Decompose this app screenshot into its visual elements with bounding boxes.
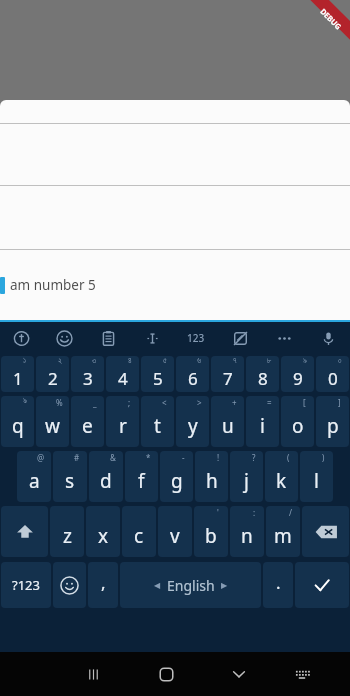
staticText: ঌ <box>23 397 27 405</box>
button[interactable]: + <box>211 396 244 447</box>
button[interactable]: ; <box>106 396 139 447</box>
button[interactable]: Stickers off <box>218 322 262 354</box>
button[interactable]: ৪ <box>106 356 139 392</box>
staticText: - <box>182 452 185 463</box>
staticText: & <box>110 452 116 463</box>
staticText: [ <box>303 397 306 408</box>
button[interactable]: = <box>246 396 279 447</box>
button[interactable]: # <box>53 451 87 502</box>
staticText: 4 <box>118 367 128 390</box>
staticText: a <box>29 468 40 494</box>
staticText: ▶ <box>221 581 228 590</box>
button[interactable]: ? <box>230 451 263 502</box>
button[interactable]: % <box>36 396 69 447</box>
staticText: ( <box>287 452 290 463</box>
staticText: v <box>170 523 180 549</box>
staticText: . <box>276 571 281 594</box>
staticText: j <box>244 468 249 494</box>
staticText: _ <box>93 397 97 408</box>
button[interactable]: ৬ <box>176 356 209 392</box>
staticText: = <box>267 397 272 408</box>
staticText: 5 <box>153 367 163 390</box>
button[interactable]: , <box>88 562 118 608</box>
staticText: m <box>274 523 292 549</box>
button[interactable]: < <box>141 396 174 447</box>
button[interactable]: am number 5 <box>0 250 350 320</box>
staticText: g <box>171 468 183 494</box>
staticText: l <box>314 468 319 494</box>
button[interactable]: & <box>89 451 123 502</box>
button[interactable]: ১ <box>1 356 34 392</box>
staticText: 8 <box>258 367 268 390</box>
button[interactable]: ) <box>300 451 333 502</box>
button[interactable]: x <box>86 506 120 557</box>
staticText: DEBUG <box>318 6 344 32</box>
button[interactable]: ◀ <box>120 562 261 608</box>
staticText: n <box>241 523 253 549</box>
button[interactable]: _ <box>71 396 104 447</box>
button[interactable]: - <box>160 451 193 502</box>
button[interactable]: [ <box>281 396 314 447</box>
staticText: ৪ <box>128 357 132 365</box>
button[interactable]: > <box>176 396 209 447</box>
staticText: 123 <box>187 331 205 345</box>
button[interactable]: Numbers <box>174 322 218 354</box>
button[interactable]: Shift <box>1 506 48 557</box>
button[interactable]: z <box>50 506 84 557</box>
button[interactable]: v <box>158 506 192 557</box>
button[interactable]: / <box>266 506 300 557</box>
button[interactable]: c <box>122 506 156 557</box>
button[interactable]: ৫ <box>141 356 174 392</box>
staticText: ?123 <box>12 576 40 594</box>
button[interactable]: Emoji <box>43 322 86 354</box>
button[interactable]: ৭ <box>211 356 244 392</box>
staticText: % <box>56 397 63 408</box>
staticText: ১ <box>23 357 27 365</box>
button[interactable]: ৮ <box>246 356 279 392</box>
staticText: ! <box>217 452 220 463</box>
button[interactable]: Backspace <box>302 506 349 557</box>
button[interactable]: Emoji <box>53 562 86 608</box>
button[interactable]: ঌ <box>1 396 34 447</box>
button[interactable]: ] <box>316 396 349 447</box>
button[interactable]: ২ <box>36 356 69 392</box>
staticText: 7 <box>223 367 233 390</box>
button[interactable]: ?123 <box>1 562 51 608</box>
button[interactable]: Hide keyboard <box>205 652 273 696</box>
staticText: e <box>82 413 93 439</box>
button[interactable]: Home <box>127 652 205 696</box>
button[interactable]: @ <box>17 451 51 502</box>
button[interactable]: ৩ <box>71 356 104 392</box>
button[interactable]: Text edit <box>130 322 174 354</box>
button[interactable]: ৯ <box>281 356 314 392</box>
staticText: 6 <box>188 367 198 390</box>
staticText: q <box>12 413 24 439</box>
button[interactable]: Change keyboard <box>273 652 331 696</box>
button[interactable]: ( <box>265 451 298 502</box>
button[interactable]: : <box>230 506 264 557</box>
staticText: i <box>260 413 265 439</box>
button[interactable]: Translate <box>0 322 43 354</box>
button[interactable]: . <box>263 562 293 608</box>
button[interactable]: ' <box>194 506 228 557</box>
staticText: / <box>289 507 292 518</box>
button[interactable]: Recent apps <box>59 652 127 696</box>
staticText: ৩ <box>92 357 97 365</box>
staticText: ] <box>338 397 341 408</box>
staticText: ২ <box>58 357 62 365</box>
button[interactable]: Voice input <box>306 322 350 354</box>
staticText: : <box>253 507 256 518</box>
button[interactable]: More options <box>262 322 306 354</box>
staticText: ০ <box>338 357 342 365</box>
staticText: u <box>222 413 234 439</box>
staticText: c <box>134 523 144 549</box>
button[interactable]: Clipboard <box>86 322 130 354</box>
staticText: k <box>276 468 287 494</box>
button[interactable]: * <box>125 451 158 502</box>
button[interactable]: ০ <box>316 356 349 392</box>
staticText: 3 <box>83 367 93 390</box>
button[interactable]: Enter <box>295 562 349 608</box>
button[interactable]: ! <box>195 451 228 502</box>
